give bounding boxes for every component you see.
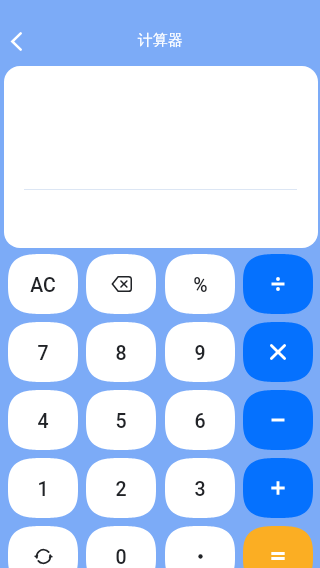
button[interactable]: 0 (86, 526, 156, 568)
staticText: 4 (37, 410, 49, 433)
button[interactable]: 2 (86, 458, 156, 518)
staticText: 5 (115, 410, 127, 433)
button[interactable]: 5 (86, 390, 156, 450)
staticText: 2 (115, 478, 127, 501)
button[interactable]: 6 (165, 390, 235, 450)
button[interactable]: Switch (8, 526, 78, 568)
button[interactable]: Divide (243, 254, 313, 314)
button[interactable]: 8 (86, 322, 156, 382)
staticText: AC (30, 274, 56, 297)
button[interactable]: Multiply (243, 322, 313, 382)
button[interactable]: 9 (165, 322, 235, 382)
button[interactable]: Back (1, 26, 31, 56)
button[interactable]: 1 (8, 458, 78, 518)
staticText: 6 (194, 410, 206, 433)
button[interactable]: Plus (243, 458, 313, 518)
button[interactable]: AC (8, 254, 78, 314)
button[interactable]: 4 (8, 390, 78, 450)
button[interactable]: 7 (8, 322, 78, 382)
staticText: % (193, 274, 208, 297)
staticText: 0 (115, 546, 127, 568)
button[interactable]: Equals (243, 526, 313, 568)
button[interactable] (165, 526, 235, 568)
staticText: 9 (194, 342, 206, 365)
staticText: 8 (115, 342, 127, 365)
button[interactable]: 3 (165, 458, 235, 518)
staticText: 1 (37, 478, 49, 501)
staticText: 3 (194, 478, 206, 501)
staticText: 计算器 (138, 31, 183, 50)
button[interactable]: Backspace (86, 254, 156, 314)
button[interactable]: Minus (243, 390, 313, 450)
staticText: 7 (37, 342, 49, 365)
button[interactable]: % (165, 254, 235, 314)
